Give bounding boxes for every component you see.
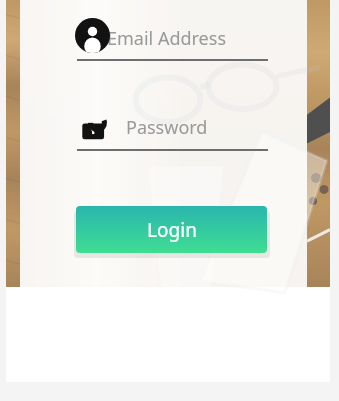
other: Password — [79, 108, 112, 141]
staticText: Password — [126, 115, 208, 140]
staticText: Login — [147, 217, 197, 243]
button[interactable]: Email Address — [71, 18, 268, 64]
button[interactable]: Password — [71, 106, 268, 152]
staticText: Email Address — [107, 26, 227, 51]
other: Account — [75, 18, 110, 53]
button[interactable]: Login — [76, 206, 267, 253]
